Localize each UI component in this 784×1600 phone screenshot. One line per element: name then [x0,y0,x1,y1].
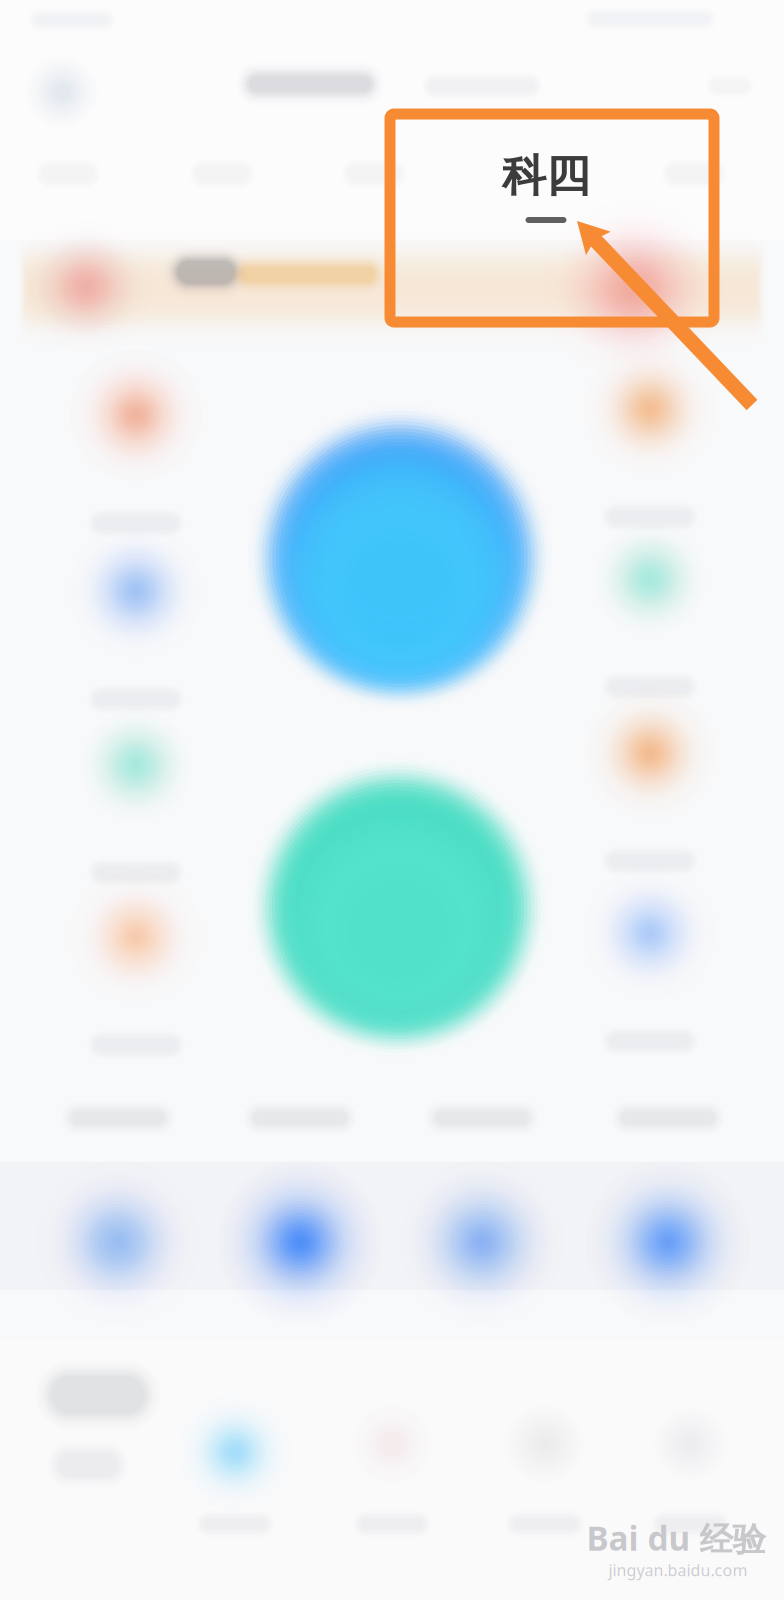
button[interactable] [620,132,768,252]
button[interactable]: More [670,55,784,117]
button[interactable]: Discover [465,1350,625,1590]
button[interactable] [23,1070,213,1360]
button[interactable] [530,719,770,949]
button[interactable] [0,132,142,252]
button[interactable]: Profile [0,17,137,167]
button[interactable] [16,557,256,787]
button[interactable] [530,545,770,775]
button[interactable]: Practice [155,1350,315,1590]
button[interactable]: 科四 [472,132,620,252]
button[interactable] [530,375,770,605]
button[interactable] [16,381,256,611]
staticText: Bai du 经验 [586,1516,765,1560]
button[interactable]: Mine [610,1350,770,1590]
button[interactable] [16,903,256,1133]
button[interactable] [16,731,256,961]
button[interactable] [300,132,448,252]
staticText: jingyan.baidu.com [608,1559,747,1581]
button[interactable] [387,1070,577,1360]
button[interactable] [530,899,770,1129]
button[interactable] [148,132,296,252]
button[interactable] [573,1070,763,1360]
button[interactable]: Notice [0,194,784,424]
staticText: 科四 [502,149,590,203]
button[interactable] [205,1070,395,1360]
button[interactable]: Home [0,1325,203,1565]
